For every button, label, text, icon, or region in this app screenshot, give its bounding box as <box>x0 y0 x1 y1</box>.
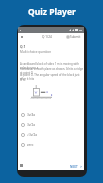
staticText: √3v/2a <box>27 133 37 137</box>
staticText: NEXT <box>70 165 78 169</box>
staticText: > <box>80 164 83 169</box>
staticText: O is. <box>20 78 26 82</box>
staticText: 3v/4a <box>27 113 35 117</box>
staticText: at point O. The angular speed of the blo… <box>20 73 86 81</box>
staticText: Multi choice question <box>20 50 52 54</box>
button[interactable]: Menu <box>18 33 26 40</box>
staticText: A cardboard block of sides 1 m is moving… <box>20 62 86 70</box>
staticText: Q.1 <box>20 44 26 48</box>
button[interactable]: 3v/2a <box>18 120 84 130</box>
button[interactable]: NEXT <box>70 164 83 169</box>
staticText: Q 1/24 <box>42 35 52 39</box>
staticText: Submit <box>70 35 81 39</box>
staticText: zero <box>27 143 34 147</box>
button[interactable]: Submit <box>67 33 84 40</box>
button[interactable]: zero <box>18 140 84 150</box>
button[interactable]: 3v/4a <box>18 110 84 120</box>
button[interactable]: √3v/2a <box>18 130 84 140</box>
staticText: horizontal smooth plane as shown. It hit… <box>20 67 86 75</box>
staticText: 3v/2a <box>27 123 35 127</box>
staticText: Quiz Player <box>28 6 76 17</box>
